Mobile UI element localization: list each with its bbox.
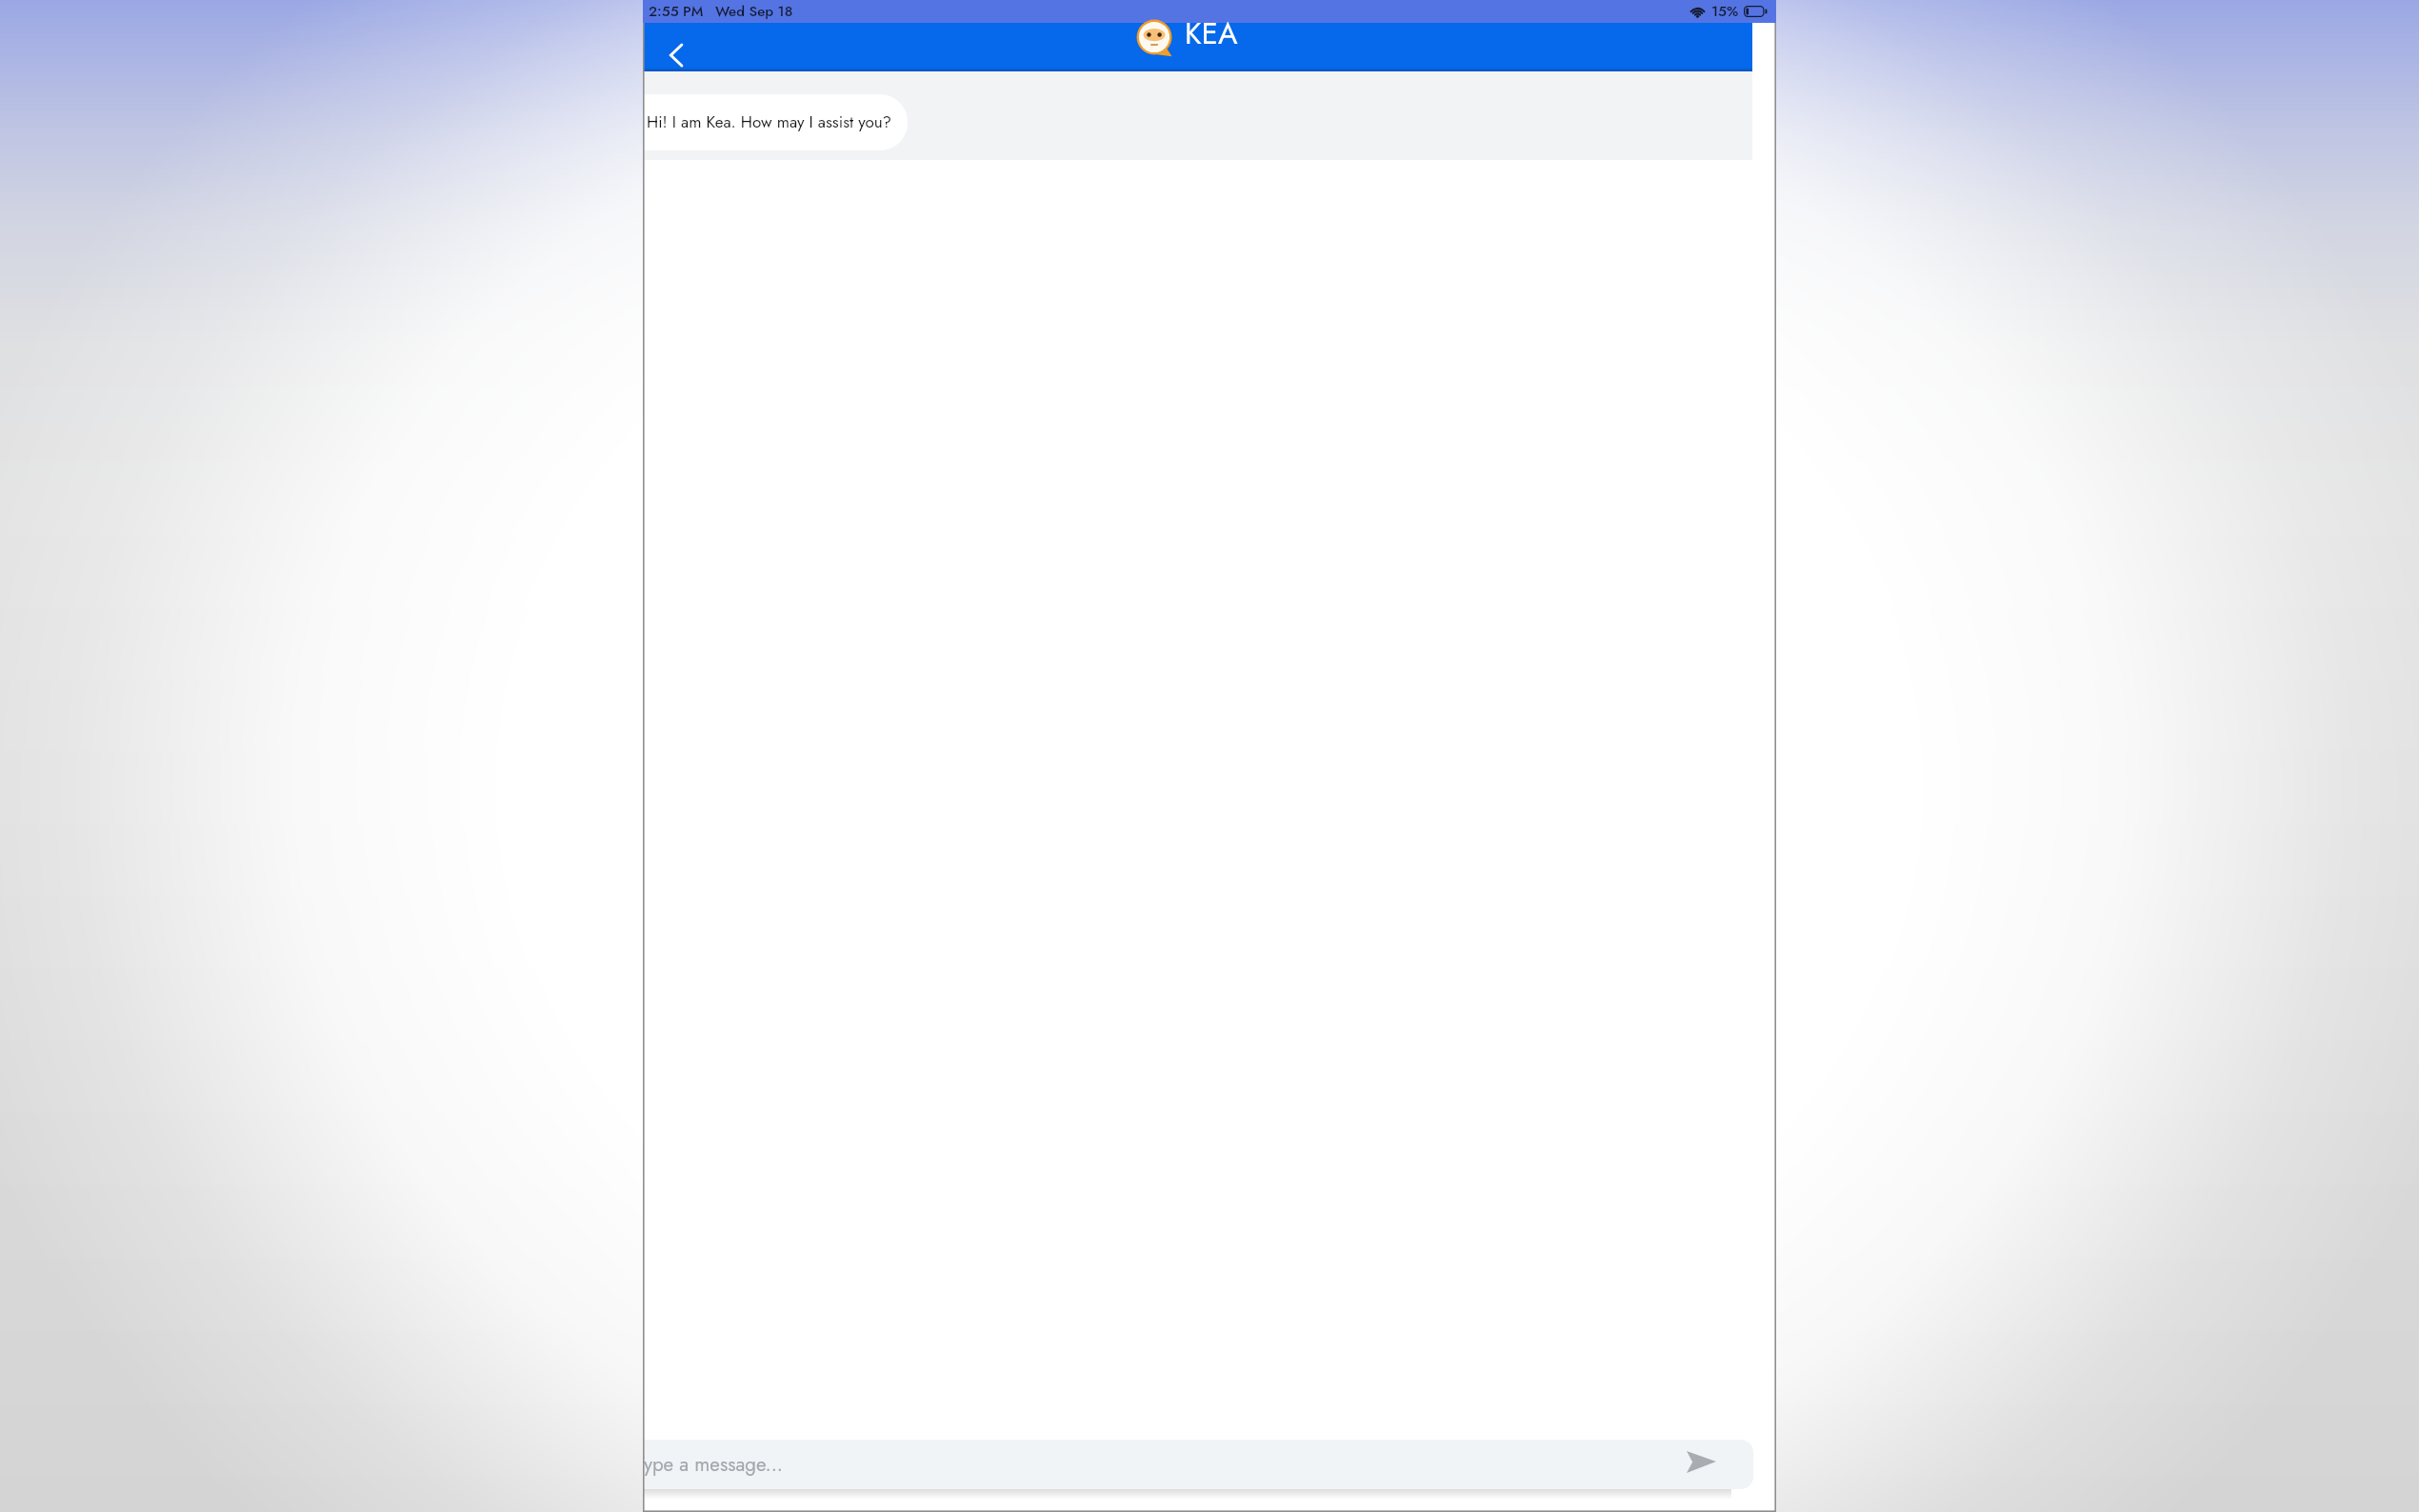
staticText: 15% [1711,1,1739,22]
button[interactable]: Send [1669,1437,1732,1486]
staticText: 2:55 PM [649,1,704,22]
button[interactable]: Back [654,36,698,74]
staticText: KEA [1185,12,1238,55]
staticText: Wed Sep 18 [715,1,793,22]
button[interactable]: Type a message... [643,1440,1753,1489]
staticText: Hi! I am Kea. How may I assist you? [647,110,892,134]
staticText: Type a message... [643,1450,783,1479]
